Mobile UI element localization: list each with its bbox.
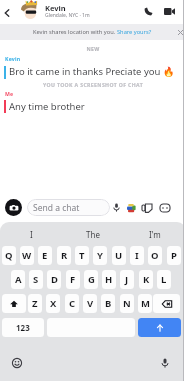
staticText: Bro it came in thanks Preciate you 🔥	[9, 65, 175, 78]
button[interactable]: U	[112, 246, 126, 265]
button[interactable]: S	[29, 270, 43, 289]
staticText: X	[50, 297, 57, 310]
button[interactable]: T	[75, 246, 89, 265]
button[interactable]: D	[47, 270, 61, 289]
button[interactable]: I	[0, 224, 62, 244]
button[interactable]: O	[148, 246, 162, 265]
button[interactable]: Video call	[161, 3, 178, 20]
button[interactable]: Dismiss	[172, 24, 186, 40]
button[interactable]: Kevin shares location with you.	[0, 24, 186, 40]
staticText: Kevin	[45, 3, 66, 13]
staticText: Q	[5, 249, 13, 262]
button[interactable]: Emoji keyboard	[8, 354, 26, 372]
staticText: YOU TOOK A SCREENSHOT OF CHAT	[0, 81, 186, 88]
staticText: N	[123, 297, 131, 310]
button[interactable]: K	[139, 270, 153, 289]
staticText: T	[79, 249, 85, 262]
button[interactable]: C	[65, 294, 79, 313]
staticText: Send a chat	[33, 202, 80, 214]
button[interactable]: N	[120, 294, 134, 313]
staticText: L	[161, 273, 167, 286]
staticText: I	[135, 249, 139, 262]
staticText: Kevin shares location with you.	[33, 28, 117, 36]
staticText: Z	[32, 297, 38, 310]
staticText: Glendale, NYC · 1m	[45, 12, 90, 19]
button[interactable]: G	[84, 270, 98, 289]
staticText: I	[30, 229, 33, 240]
button[interactable]: Shift	[2, 294, 26, 313]
staticText: I'm	[149, 229, 161, 240]
button[interactable]: X	[46, 294, 60, 313]
staticText: The	[86, 229, 100, 240]
button[interactable]: I	[130, 246, 144, 265]
button[interactable]: Z	[28, 294, 42, 313]
button[interactable]: F	[66, 270, 80, 289]
staticText: E	[42, 249, 48, 262]
button[interactable]: J	[120, 270, 134, 289]
button[interactable]: I'm	[124, 224, 186, 244]
staticText: 123	[16, 322, 30, 333]
staticText: U	[115, 249, 123, 262]
staticText: V	[87, 297, 94, 310]
button[interactable]: 123	[2, 318, 44, 337]
staticText: M	[141, 297, 150, 310]
button[interactable]: B	[101, 294, 115, 313]
button[interactable]: Voice call	[140, 3, 157, 20]
button[interactable]: V	[83, 294, 97, 313]
staticText: S	[33, 273, 39, 286]
staticText: Any time brother	[9, 100, 85, 113]
button[interactable]: R	[57, 246, 71, 265]
staticText: A	[15, 273, 22, 286]
staticText: H	[105, 273, 113, 286]
button[interactable]: Voice note	[109, 199, 124, 216]
button[interactable]: H	[102, 270, 116, 289]
staticText: Share yours?	[117, 28, 152, 36]
staticText: B	[105, 297, 112, 310]
button[interactable]: A	[11, 270, 25, 289]
button[interactable]: Y	[93, 246, 107, 265]
button[interactable]: W	[20, 246, 34, 265]
staticText: W	[22, 249, 32, 262]
staticText: Y	[97, 249, 103, 262]
staticText: F	[70, 273, 76, 286]
button[interactable]: M	[138, 294, 152, 313]
button[interactable]: The	[62, 224, 124, 244]
button[interactable]: Back	[0, 3, 14, 22]
button[interactable]: Send a chat	[27, 199, 110, 216]
staticText: P	[171, 249, 177, 262]
button[interactable]: Stickers	[139, 199, 154, 216]
staticText: J	[125, 273, 129, 286]
button[interactable]: Bitmoji sticker	[123, 199, 138, 216]
button[interactable]: Open camera	[5, 199, 22, 216]
staticText: Me	[5, 90, 14, 97]
staticText: C	[69, 297, 76, 310]
staticText: G	[88, 273, 95, 286]
button[interactable]: Voice input	[156, 354, 174, 372]
staticText: NEW	[0, 45, 186, 52]
button[interactable]: Q	[2, 246, 16, 265]
button[interactable]: Send	[138, 318, 181, 337]
staticText: R	[61, 249, 68, 262]
staticText: O	[151, 249, 159, 262]
button[interactable]: P	[167, 246, 181, 265]
staticText: Kevin	[5, 55, 21, 62]
staticText: K	[143, 273, 150, 286]
button[interactable]: Backspace	[153, 294, 180, 313]
button[interactable]: E	[38, 246, 52, 265]
staticText: D	[51, 273, 58, 286]
button[interactable]: L	[157, 270, 171, 289]
button[interactable]: Games	[157, 199, 172, 216]
